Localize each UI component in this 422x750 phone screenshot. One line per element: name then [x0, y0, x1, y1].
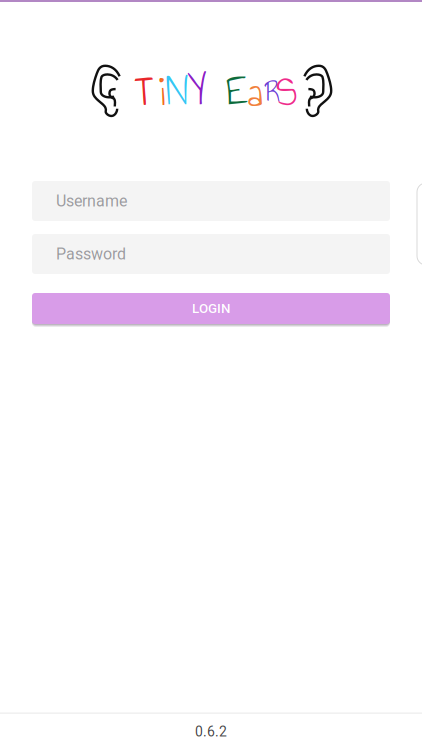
staticText: N: [166, 60, 188, 122]
button[interactable]: Password: [32, 234, 390, 274]
staticText: a: [247, 59, 262, 124]
staticText: R: [265, 69, 281, 114]
staticText: E: [226, 58, 248, 123]
staticText: Password: [56, 245, 126, 263]
staticText: Y: [187, 60, 206, 122]
staticText: LOGIN: [192, 301, 230, 316]
staticText: 0.6.2: [195, 724, 227, 740]
button[interactable]: LOGIN: [0, 293, 422, 324]
staticText: Username: [56, 192, 127, 210]
button[interactable]: Username: [32, 181, 390, 221]
staticText: S: [276, 58, 298, 123]
staticText: i: [159, 58, 165, 123]
staticText: T: [134, 58, 151, 123]
